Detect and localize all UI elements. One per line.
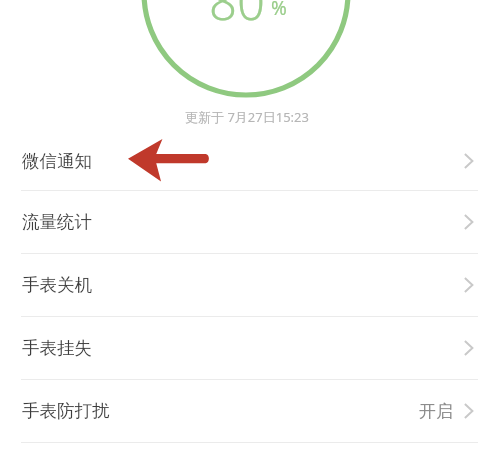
- button[interactable]: 手表关机: [0, 254, 494, 316]
- staticText: 手表挂失: [22, 337, 92, 359]
- staticText: 80: [209, 0, 265, 35]
- staticText: 流量统计: [22, 211, 92, 233]
- staticText: 微信通知: [22, 150, 92, 172]
- other: Annotation arrow pointing to 微信通知: [128, 138, 210, 182]
- staticText: 手表关机: [22, 274, 92, 296]
- staticText: 开启: [419, 401, 453, 422]
- staticText: 更新于 7月27日15:23: [0, 108, 494, 126]
- button[interactable]: 手表挂失: [0, 317, 494, 379]
- button[interactable]: 微信通知: [0, 131, 494, 190]
- button[interactable]: 手表防打扰: [0, 380, 494, 442]
- button[interactable]: 流量统计: [0, 191, 494, 253]
- staticText: %: [271, 0, 287, 21]
- staticText: 手表防打扰: [22, 400, 110, 422]
